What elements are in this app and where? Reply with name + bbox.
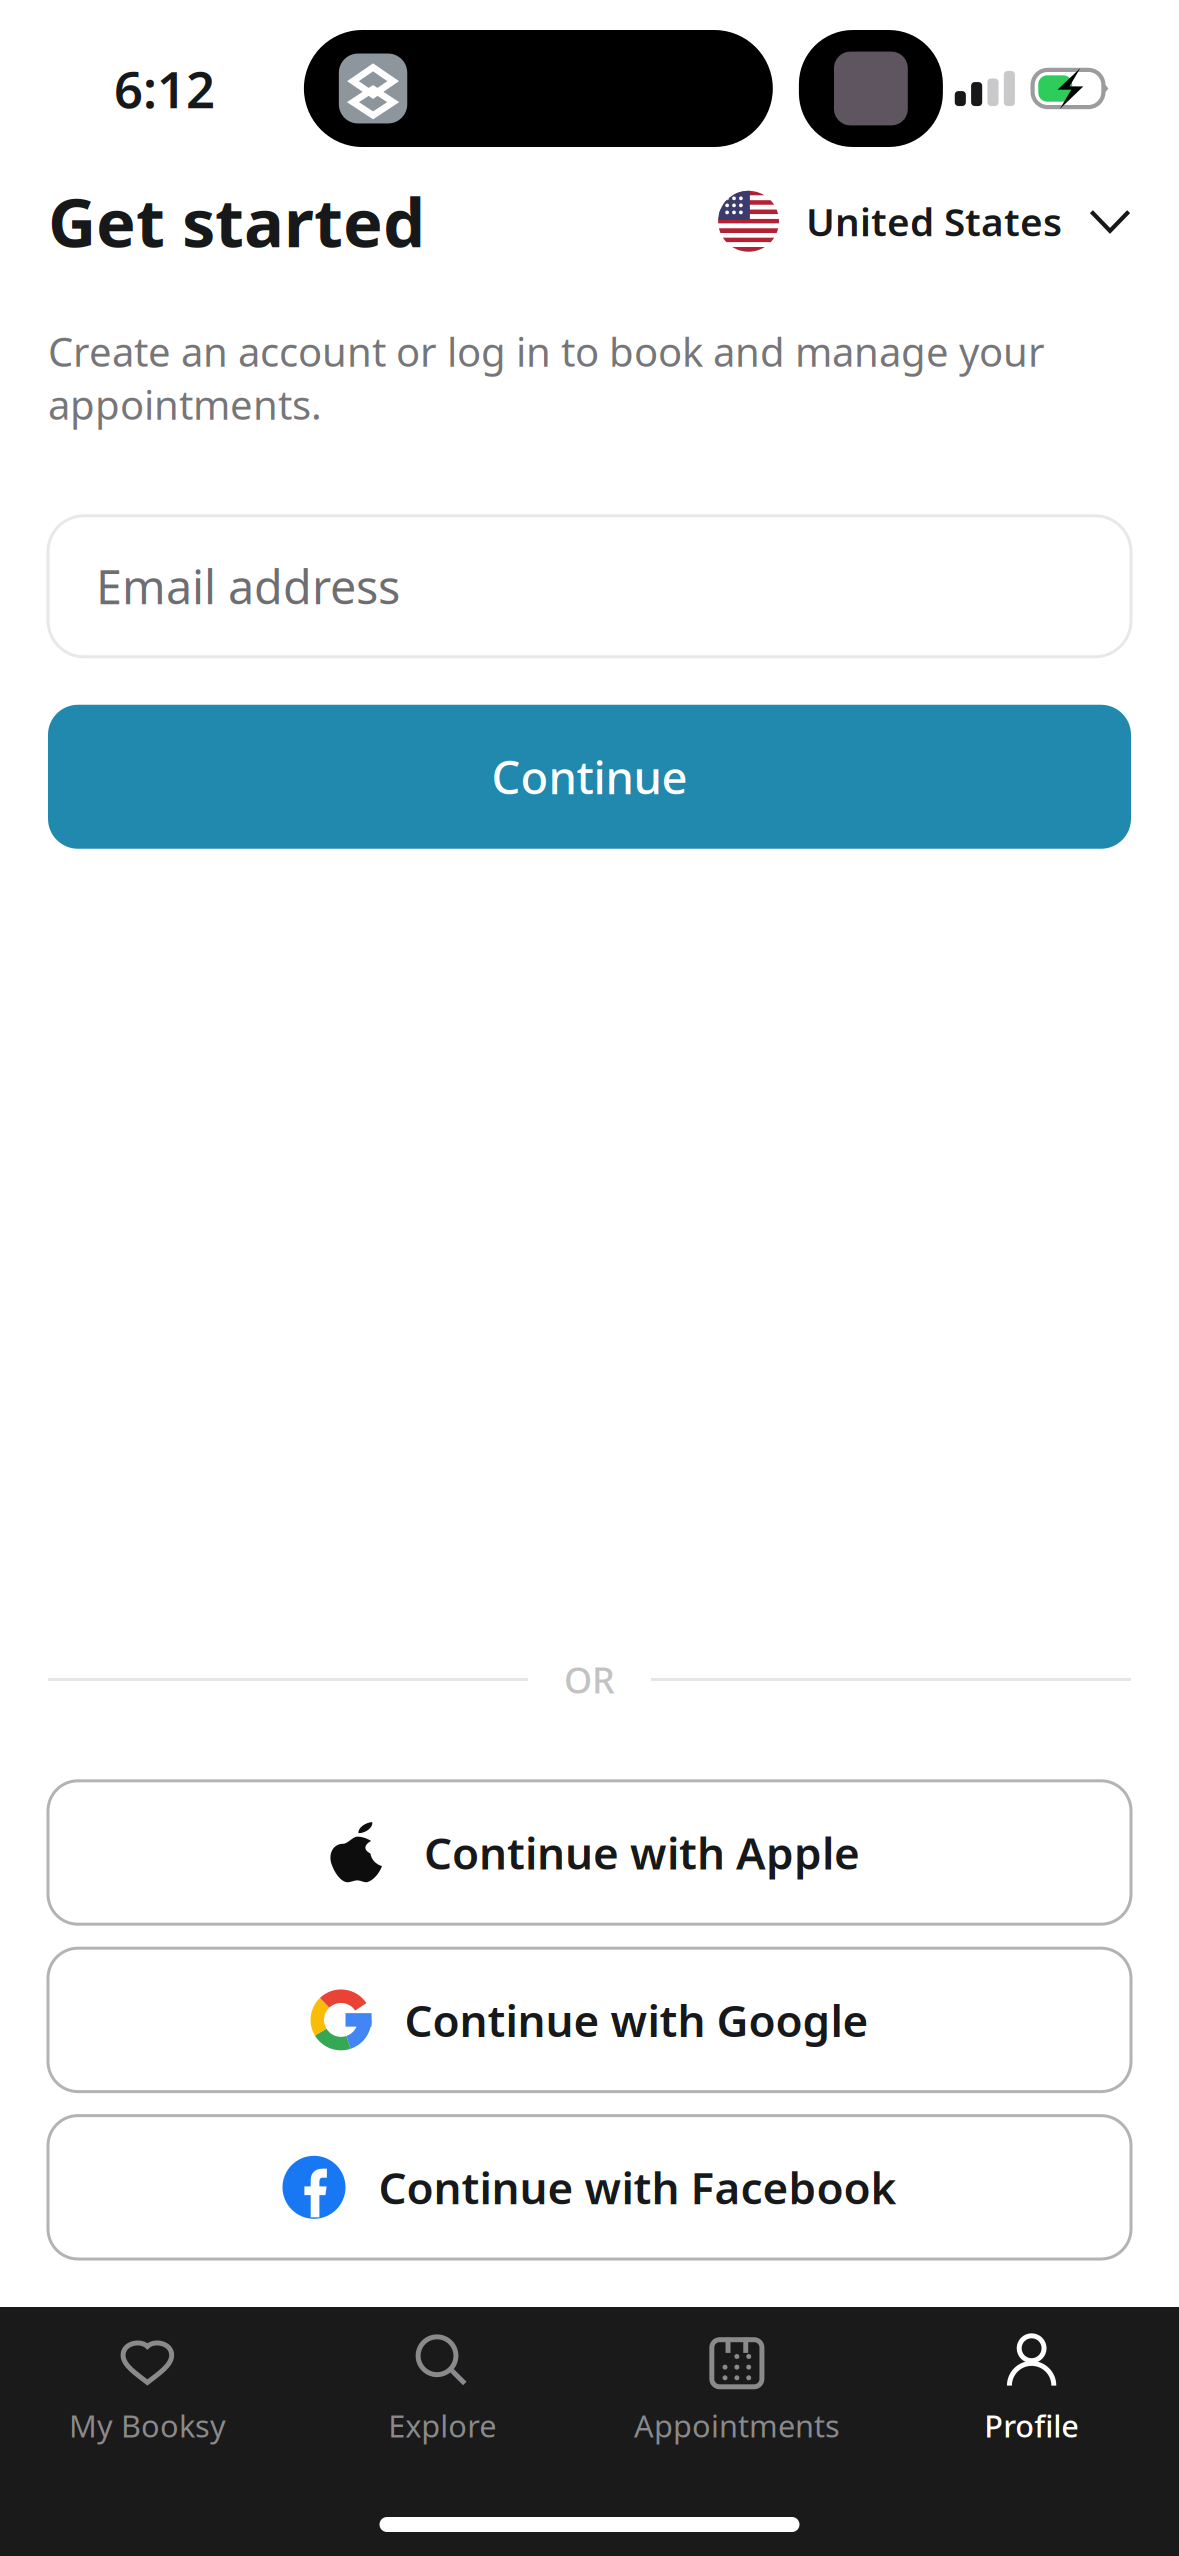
- staticText: Continue with Google: [405, 1991, 869, 2049]
- button[interactable]: Continue with Google: [48, 1948, 1131, 2092]
- staticText: United States: [806, 196, 1062, 247]
- button[interactable]: My Booksy: [0, 2335, 295, 2446]
- button[interactable]: United States: [718, 191, 1131, 252]
- staticText: Explore: [388, 2405, 496, 2446]
- staticText: Continue with Apple: [424, 1823, 860, 1882]
- button[interactable]: Continue with Apple: [48, 1781, 1131, 1924]
- button[interactable]: Continue with Facebook: [48, 2116, 1131, 2259]
- staticText: Get started: [48, 177, 425, 265]
- button[interactable]: Explore: [295, 2335, 590, 2446]
- staticText: Profile: [984, 2405, 1079, 2446]
- staticText: Continue with Facebook: [378, 2158, 896, 2216]
- staticText: Email address: [96, 555, 400, 617]
- button[interactable]: Continue: [48, 705, 1131, 849]
- button[interactable]: Profile: [884, 2335, 1179, 2446]
- staticText: 6:12: [114, 55, 215, 122]
- button[interactable]: Email address: [48, 516, 1131, 657]
- staticText: My Booksy: [69, 2405, 226, 2446]
- staticText: OR: [564, 1656, 615, 1703]
- staticText: Create an account or log in to book and …: [48, 325, 1045, 431]
- staticText: Continue: [491, 747, 687, 807]
- button[interactable]: Appointments: [589, 2335, 884, 2446]
- staticText: Appointments: [634, 2405, 840, 2446]
